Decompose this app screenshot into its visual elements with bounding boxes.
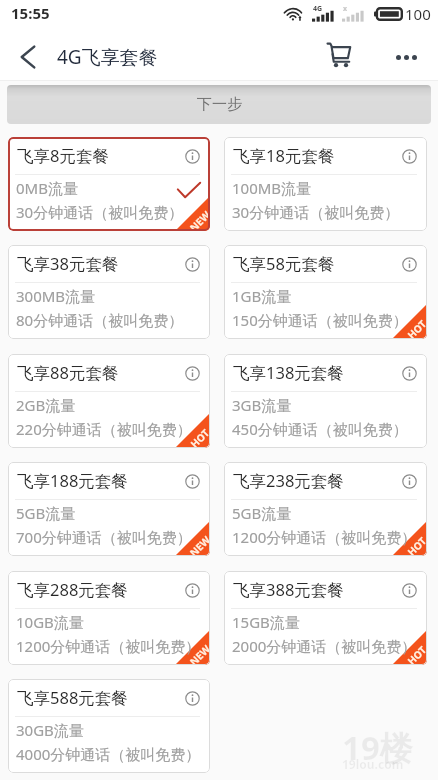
staticText: 飞享38元套餐 (17, 252, 119, 275)
staticText: 450分钟通话（被叫免费） (232, 419, 408, 439)
button[interactable]: 下一步 (7, 85, 431, 124)
staticText: NEW (187, 533, 210, 556)
button[interactable]: 飞享38元套餐 (8, 245, 210, 339)
staticText: HOT (404, 316, 427, 339)
button[interactable]: Shopping cart (320, 33, 357, 81)
button[interactable]: Back (3, 33, 52, 81)
staticText: 1200分钟通话（被叫免费） (16, 636, 201, 656)
button[interactable]: 飞享588元套餐 (8, 679, 210, 773)
staticText: 飞享288元套餐 (17, 578, 128, 601)
staticText: 飞享188元套餐 (17, 469, 128, 492)
staticText: 100MB流量 (232, 178, 312, 198)
staticText: 220分钟通话（被叫免费） (16, 419, 192, 439)
button[interactable]: 飞享18元套餐 (224, 137, 427, 231)
staticText: 19lou.com (342, 756, 404, 772)
staticText: 5GB流量 (232, 503, 292, 523)
staticText: 15GB流量 (232, 612, 300, 632)
staticText: 4G (313, 4, 323, 14)
staticText: 10GB流量 (16, 612, 84, 632)
staticText: NEW (187, 642, 210, 665)
button[interactable]: HOT (8, 354, 210, 448)
button[interactable]: NEW (8, 571, 210, 665)
staticText: 飞享138元套餐 (233, 361, 344, 384)
staticText: 飞享388元套餐 (233, 578, 344, 601)
button[interactable]: More options (382, 33, 430, 81)
staticText: 30分钟通话（被叫免费） (232, 202, 400, 222)
staticText: 80分钟通话（被叫免费） (16, 310, 184, 330)
staticText: 飞享88元套餐 (17, 361, 119, 384)
staticText: HOT (404, 642, 427, 665)
staticText: 30GB流量 (16, 720, 84, 740)
staticText: 5GB流量 (16, 503, 76, 523)
staticText: 飞享588元套餐 (17, 686, 128, 709)
staticText: 4G飞享套餐 (57, 44, 158, 70)
staticText: 飞享8元套餐 (17, 144, 109, 167)
button[interactable]: HOT (224, 462, 427, 556)
staticText: 19楼 (342, 725, 413, 770)
button[interactable]: NEW (8, 137, 210, 231)
staticText: NEW (187, 208, 210, 231)
staticText: 1GB流量 (232, 286, 292, 306)
staticText: 飞享58元套餐 (233, 252, 335, 275)
staticText: 300MB流量 (16, 286, 96, 306)
staticText: 3GB流量 (232, 395, 292, 415)
staticText: 0MB流量 (16, 178, 78, 198)
button[interactable]: HOT (224, 571, 427, 665)
staticText: 2GB流量 (16, 395, 76, 415)
staticText: 飞享238元套餐 (233, 469, 344, 492)
staticText: x (343, 4, 348, 14)
button[interactable]: HOT (224, 245, 427, 339)
staticText: 15:55 (11, 3, 50, 23)
staticText: HOT (404, 533, 427, 556)
staticText: 2000分钟通话（被叫免费） (232, 636, 417, 656)
staticText: 飞享18元套餐 (233, 144, 335, 167)
staticText: 1200分钟通话（被叫免费） (232, 527, 417, 547)
staticText: 700分钟通话（被叫免费） (16, 527, 192, 547)
staticText: 30分钟通话（被叫免费） (16, 202, 184, 222)
button[interactable]: 飞享138元套餐 (224, 354, 427, 448)
staticText: 100 (405, 4, 431, 24)
staticText: 150分钟通话（被叫免费） (232, 310, 408, 330)
staticText: HOT (187, 425, 210, 448)
staticText: 4000分钟通话（被叫免费） (16, 744, 201, 764)
button[interactable]: NEW (8, 462, 210, 556)
staticText: 下一步 (197, 95, 242, 114)
